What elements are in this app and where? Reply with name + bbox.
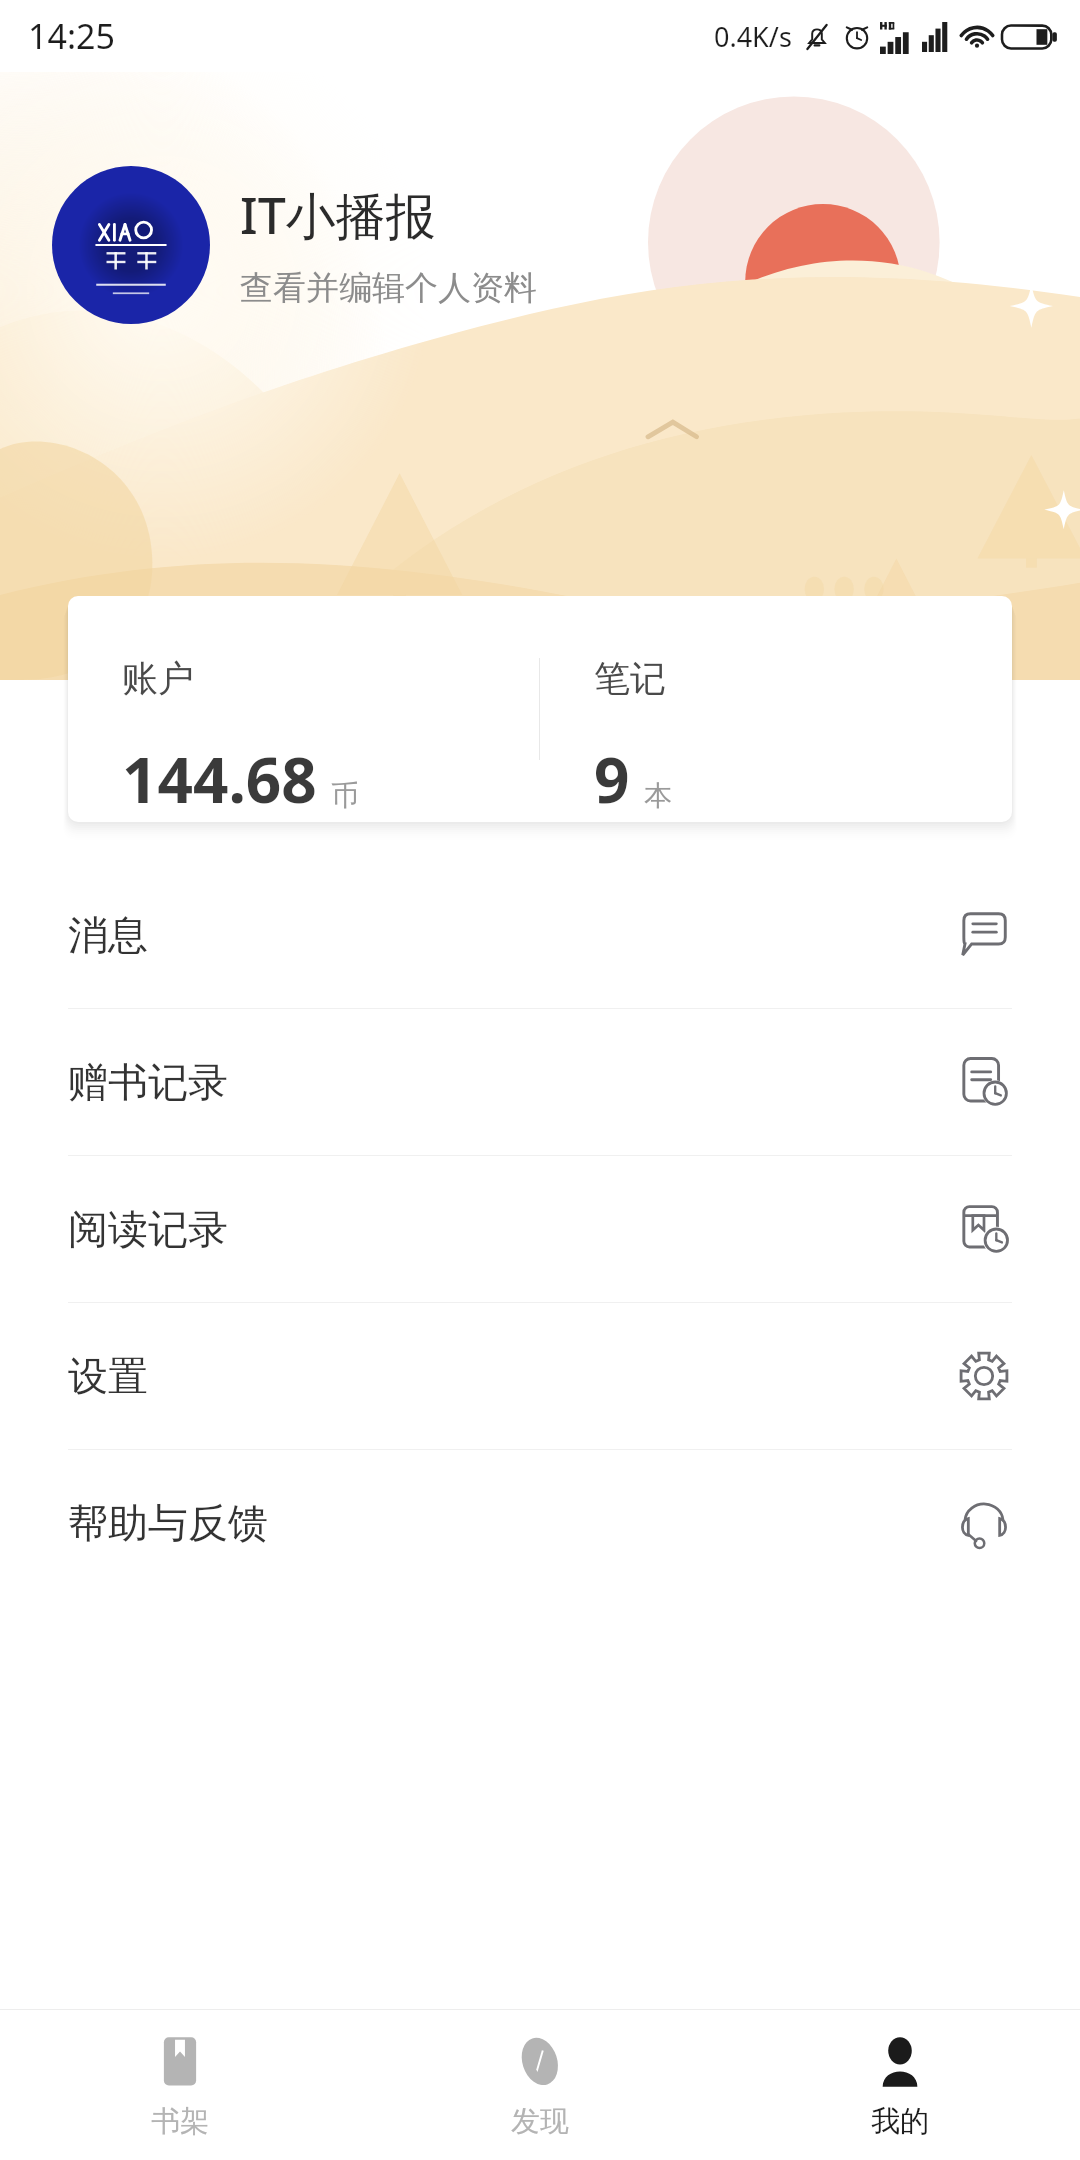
button[interactable]: 赠书记录 [0,1009,1080,1155]
staticText: 币 [331,778,359,813]
button[interactable]: 发现 [360,2010,720,2160]
staticText: 本 [644,778,672,813]
button[interactable]: 账户 [68,596,539,822]
staticText: 查看并编辑个人资料 [240,267,537,309]
button[interactable]: 笔记 [540,596,1012,822]
button[interactable]: IT小播报 [0,155,1080,335]
staticText: 账户 [122,656,194,701]
staticText: IT小播报 [240,181,436,249]
button[interactable]: 书架 [0,2010,360,2160]
staticText: 笔记 [594,656,666,701]
staticText: 144.68 [122,737,317,821]
staticText: 9 [594,737,630,821]
staticText: 发现 [511,2103,569,2140]
button[interactable]: 我的 [720,2010,1080,2160]
staticText: 消息 [68,910,148,960]
staticText: 0.4K/s [714,18,792,55]
button[interactable]: 帮助与反馈 [0,1450,1080,1596]
staticText: 我的 [871,2103,929,2140]
staticText: 设置 [68,1351,148,1401]
staticText: 14:25 [28,13,115,59]
staticText: 阅读记录 [68,1204,228,1254]
button[interactable]: 设置 [0,1303,1080,1449]
staticText: 赠书记录 [68,1057,228,1107]
staticText: 帮助与反馈 [68,1498,268,1548]
button[interactable]: 阅读记录 [0,1156,1080,1302]
staticText: 书架 [151,2103,209,2140]
button[interactable]: 消息 [0,862,1080,1008]
